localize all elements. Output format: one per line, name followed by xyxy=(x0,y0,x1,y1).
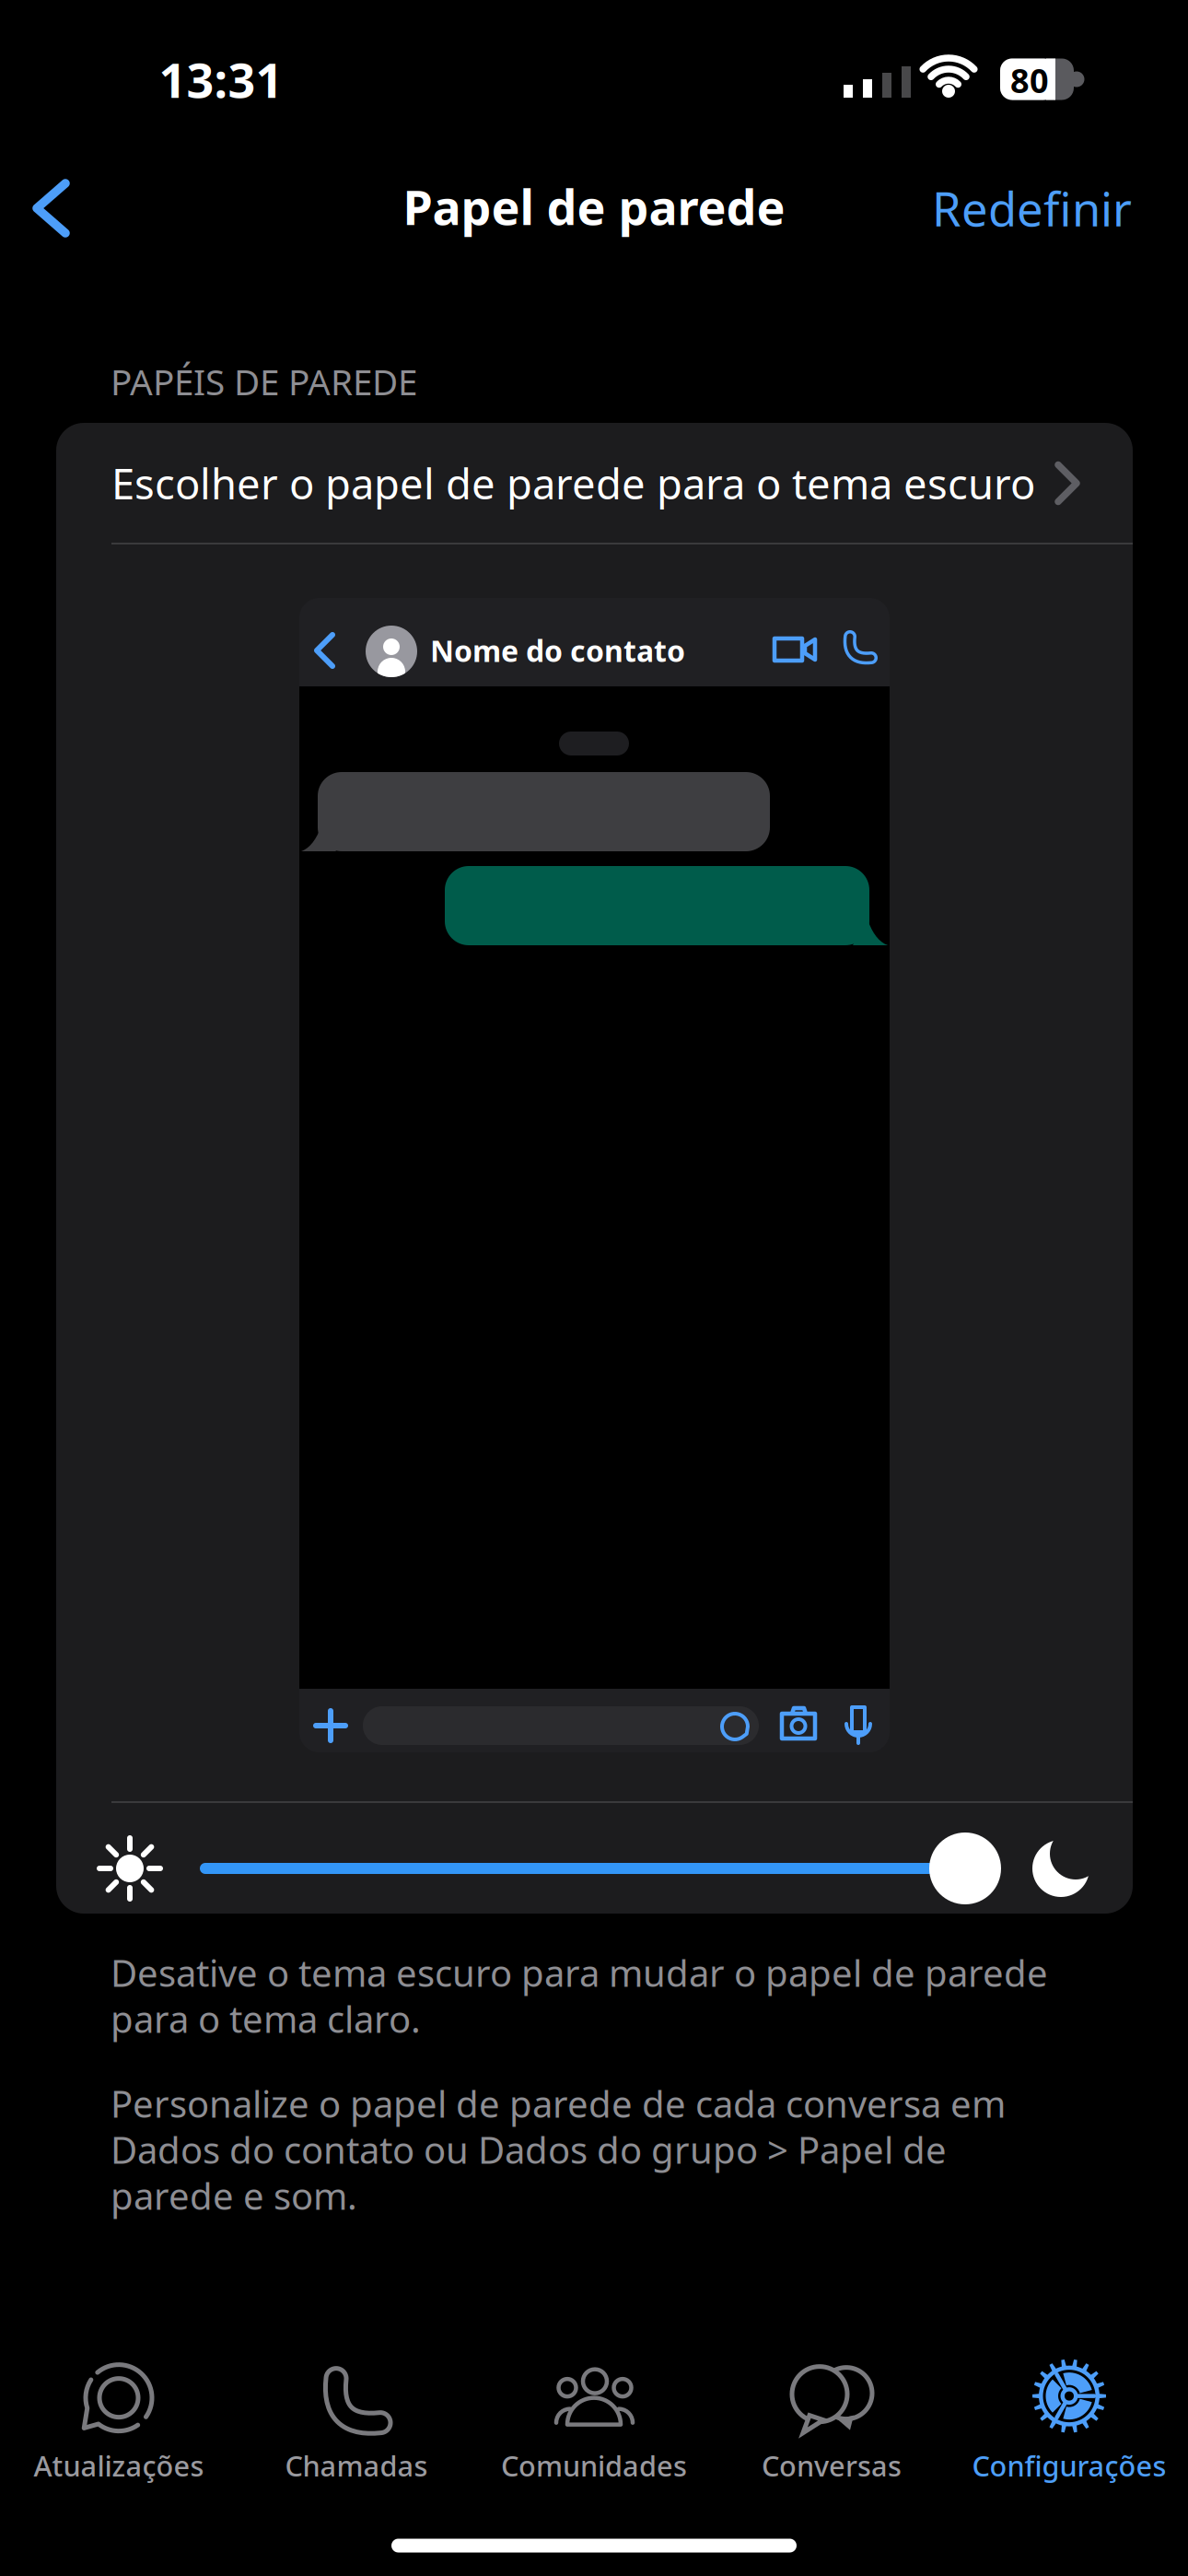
staticText: para o tema claro. xyxy=(111,1994,421,2043)
button[interactable]: Chamadas xyxy=(238,2365,475,2483)
button[interactable] xyxy=(32,179,73,238)
staticText: 80 xyxy=(1010,58,1049,102)
button[interactable]: Comunidades xyxy=(475,2365,713,2483)
staticText: parede e som. xyxy=(111,2171,357,2220)
button[interactable]: Atualizações xyxy=(0,2365,238,2483)
staticText: Configurações xyxy=(972,2447,1166,2484)
staticText: Comunidades xyxy=(501,2447,687,2484)
staticText: Desative o tema escuro para mudar o pape… xyxy=(111,1948,1048,1997)
staticText: Conversas xyxy=(762,2447,902,2484)
staticText: PAPÉIS DE PAREDE xyxy=(111,358,417,405)
staticText: Dados do contato ou Dados do grupo > Pap… xyxy=(111,2125,947,2174)
staticText: Nome do contato xyxy=(430,631,685,670)
staticText: Redefinir xyxy=(932,177,1132,239)
staticText: Papel de parede xyxy=(403,175,785,238)
button[interactable]: Escolher o papel de parede para o tema e… xyxy=(56,423,1133,544)
staticText: Personalize o papel de parede de cada co… xyxy=(111,2079,1006,2128)
button[interactable]: Redefinir xyxy=(856,177,1132,239)
staticText: Atualizações xyxy=(34,2447,204,2484)
button[interactable]: Conversas xyxy=(713,2365,950,2483)
staticText: Escolher o papel de parede para o tema e… xyxy=(111,455,1035,511)
button[interactable]: Configurações xyxy=(950,2365,1188,2483)
staticText: Chamadas xyxy=(285,2447,428,2484)
staticText: 13:31 xyxy=(159,47,283,111)
